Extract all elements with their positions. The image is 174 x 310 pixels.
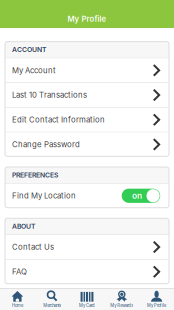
- button[interactable]: Merchants: [35, 289, 70, 310]
- button[interactable]: FAQ: [5, 260, 169, 284]
- button[interactable]: Home: [0, 289, 35, 310]
- staticText: My Profile: [147, 303, 166, 308]
- staticText: Change Password: [12, 140, 80, 149]
- button[interactable]: My Account: [5, 58, 169, 82]
- staticText: ACCOUNT: [12, 45, 46, 54]
- staticText: My Account: [12, 66, 56, 75]
- staticText: Home: [12, 303, 23, 308]
- button[interactable]: Edit Contact Information: [5, 108, 169, 132]
- staticText: Find My Location: [12, 191, 76, 200]
- staticText: on: [132, 191, 142, 201]
- staticText: My Profile: [67, 14, 106, 23]
- button[interactable]: Change Password: [5, 132, 169, 156]
- button[interactable]: Last 10 Transactions: [5, 83, 169, 107]
- staticText: Contact Us: [12, 242, 54, 252]
- staticText: Edit Contact Information: [12, 115, 105, 124]
- staticText: My Rewards: [110, 303, 133, 308]
- button[interactable]: My Profile: [139, 289, 174, 310]
- staticText: FAQ: [12, 267, 27, 276]
- button[interactable]: Find My Location, on: [122, 189, 160, 203]
- staticText: ABOUT: [12, 222, 35, 230]
- staticText: Last 10 Transactions: [12, 90, 87, 100]
- staticText: Merchants: [43, 303, 61, 308]
- button[interactable]: My Card: [70, 289, 104, 310]
- staticText: My Card: [79, 303, 95, 308]
- staticText: PREFERENCES: [12, 171, 58, 179]
- button[interactable]: Contact Us: [5, 235, 169, 259]
- button[interactable]: My Rewards: [104, 289, 139, 310]
